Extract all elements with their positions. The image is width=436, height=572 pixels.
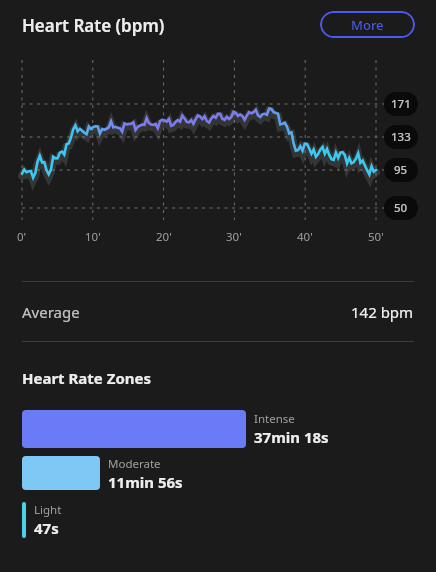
staticText: 0' [17,229,27,245]
button[interactable]: More [320,11,415,38]
staticText: 47s [34,518,59,538]
staticText: Heart Rate (bpm) [22,14,165,37]
staticText: 133 [391,129,411,145]
staticText: 30' [226,229,242,245]
button[interactable]: Intense [22,410,416,448]
staticText: 37min 18s [254,427,329,447]
staticText: 95 [394,162,408,178]
staticText: 40' [297,229,313,245]
button[interactable]: Average [22,282,414,341]
staticText: 171 [391,96,411,112]
staticText: 11min 56s [108,472,183,490]
staticText: Intense [254,411,295,427]
staticText: 50 [394,200,408,216]
staticText: More [351,16,384,34]
staticText: Moderate [108,456,161,472]
button[interactable]: Moderate [22,456,416,490]
staticText: 10' [85,229,101,245]
staticText: 20' [156,229,172,245]
staticText: Average [22,302,351,322]
staticText: 142 bpm [351,302,414,322]
staticText: Light [34,502,62,518]
staticText: 50' [368,229,384,245]
button[interactable]: Light [22,502,416,538]
staticText: Heart Rate Zones [22,368,152,388]
